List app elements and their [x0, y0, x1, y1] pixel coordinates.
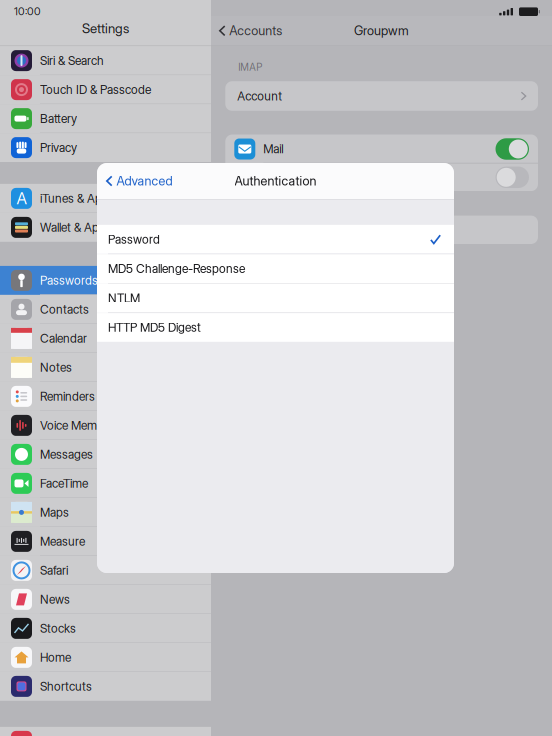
- staticText: Measure: [40, 534, 85, 549]
- staticText: Notes: [40, 360, 72, 375]
- button[interactable]: Notes: [0, 353, 211, 382]
- button[interactable]: Calendar: [0, 324, 211, 353]
- staticText: IMAP: [238, 61, 262, 73]
- button[interactable]: Account settings: [225, 216, 538, 244]
- button[interactable]: Home: [0, 643, 211, 672]
- staticText: Safari: [40, 563, 68, 578]
- staticText: Groupwm: [354, 23, 409, 38]
- button[interactable]: Battery: [0, 104, 211, 133]
- button[interactable]: Voice Memos: [0, 411, 211, 440]
- button[interactable]: Wallet & Apple Pay: [0, 213, 211, 242]
- staticText: Touch ID & Passcode: [40, 82, 151, 97]
- button[interactable]: Music: [0, 727, 211, 736]
- button[interactable]: A: [0, 184, 211, 213]
- staticText: Shortcuts: [40, 679, 92, 694]
- staticText: Calendar: [40, 331, 87, 346]
- staticText: Battery: [40, 111, 77, 126]
- staticText: Stocks: [40, 621, 76, 636]
- button[interactable]: Messages: [0, 440, 211, 469]
- staticText: Contacts: [40, 302, 89, 317]
- staticText: Settings: [82, 20, 129, 36]
- button[interactable]: Stocks: [0, 614, 211, 643]
- button[interactable]: NTLM: [97, 284, 454, 312]
- button[interactable]: Maps: [0, 498, 211, 527]
- button[interactable]: Notes off: [495, 166, 529, 188]
- button[interactable]: Shortcuts: [0, 672, 211, 701]
- staticText: Reminders: [40, 389, 95, 404]
- staticText: News: [40, 592, 70, 607]
- staticText: Maps: [40, 505, 69, 520]
- button[interactable]: Reminders: [0, 382, 211, 411]
- staticText: NTLM: [108, 291, 140, 305]
- button[interactable]: Passwords: [0, 266, 211, 295]
- button[interactable]: Safari: [0, 556, 211, 585]
- button[interactable]: News: [0, 585, 211, 614]
- staticText: Home: [40, 650, 71, 665]
- staticText: Accounts: [229, 23, 282, 38]
- button[interactable]: HTTP MD5 Digest: [97, 313, 454, 342]
- staticText: FaceTime: [40, 476, 88, 491]
- staticText: A: [16, 189, 26, 208]
- button[interactable]: FaceTime: [0, 469, 211, 498]
- staticText: MD5 Challenge-Response: [108, 261, 245, 276]
- staticText: Advanced: [116, 173, 172, 189]
- staticText: HTTP MD5 Digest: [108, 320, 201, 335]
- staticText: Passwords: [40, 273, 98, 288]
- staticText: Voice Memos: [40, 418, 110, 433]
- button[interactable]: Mail on: [495, 138, 529, 160]
- staticText: 10:00: [14, 5, 41, 18]
- button[interactable]: Account: [225, 81, 538, 111]
- staticText: iTunes & App Store: [40, 191, 140, 206]
- button[interactable]: Password: [97, 225, 454, 254]
- staticText: Siri & Search: [40, 53, 104, 68]
- staticText: Messages: [40, 447, 93, 462]
- button[interactable]: MD5 Challenge-Response: [97, 254, 454, 283]
- button[interactable]: Advanced: [106, 167, 172, 195]
- staticText: Authentication: [234, 173, 316, 189]
- button[interactable]: Contacts: [0, 295, 211, 324]
- button[interactable]: Siri & Search: [0, 46, 211, 75]
- staticText: Account: [237, 89, 282, 103]
- button[interactable]: Touch ID & Passcode: [0, 75, 211, 104]
- button[interactable]: Accounts: [219, 17, 286, 44]
- staticText: Mail: [263, 142, 283, 156]
- button[interactable]: Measure: [0, 527, 211, 556]
- staticText: Privacy: [40, 140, 77, 155]
- staticText: Password: [108, 232, 160, 246]
- button[interactable]: Privacy: [0, 133, 211, 162]
- staticText: Wallet & Apple Pay: [40, 220, 136, 235]
